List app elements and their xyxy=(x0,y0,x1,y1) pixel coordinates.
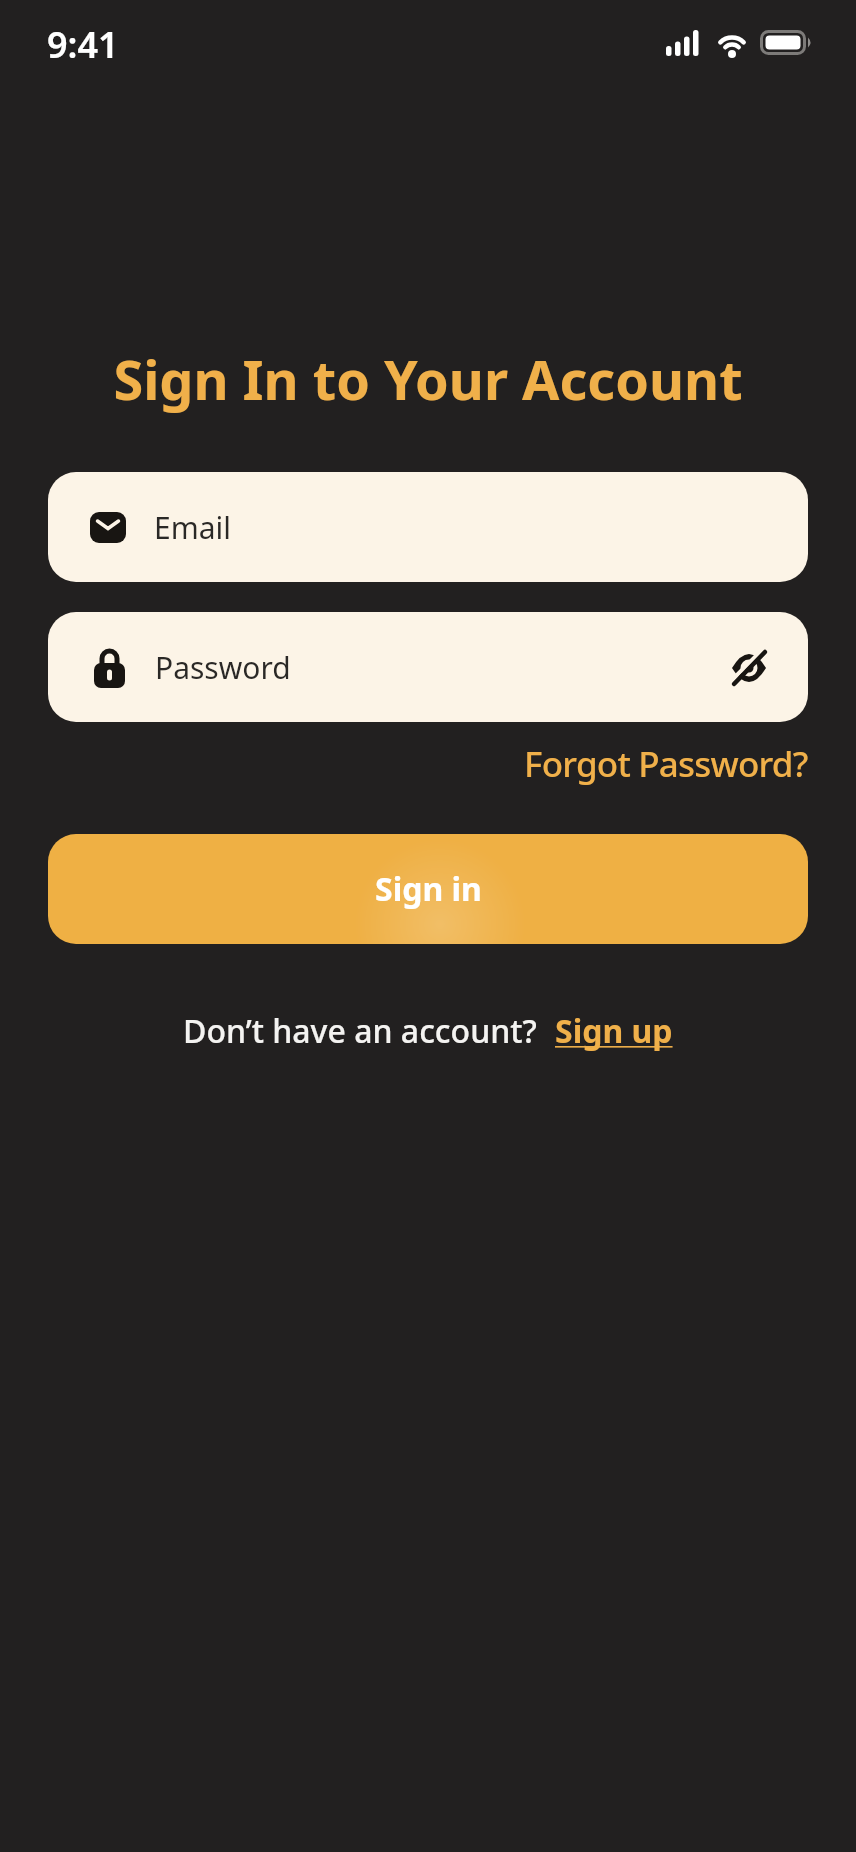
button[interactable]: Sign up xyxy=(555,1009,673,1053)
staticText: Don’t have an account? xyxy=(183,1009,537,1053)
button[interactable]: Sign in xyxy=(48,834,808,944)
staticText: Sign in xyxy=(375,867,482,911)
staticText: 9:41 xyxy=(47,20,119,69)
staticText: Sign In to Your Account xyxy=(0,342,856,416)
staticText: Email xyxy=(154,507,232,548)
button[interactable]: Forgot Password? xyxy=(524,740,808,788)
button[interactable]: Email xyxy=(48,472,808,582)
button[interactable]: Password xyxy=(48,612,808,722)
staticText: Password xyxy=(155,647,291,688)
